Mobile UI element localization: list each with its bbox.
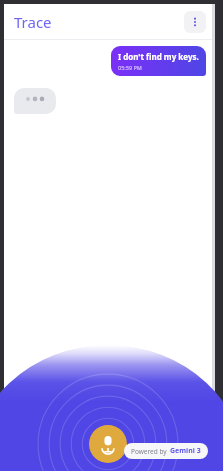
button[interactable]: Trace <box>14 12 52 32</box>
button[interactable]: More options <box>184 11 206 33</box>
button[interactable]: Assistant is typing <box>14 88 56 114</box>
staticText: 05:59 PM <box>118 64 142 71</box>
staticText: Gemini 3 <box>170 446 201 456</box>
button[interactable]: Start voice input <box>89 425 127 463</box>
button[interactable]: Powered by <box>124 443 208 459</box>
button[interactable]: I don't find my keys. <box>111 46 206 76</box>
staticText: I don't find my keys. <box>118 51 199 62</box>
staticText: Powered by <box>131 447 167 456</box>
